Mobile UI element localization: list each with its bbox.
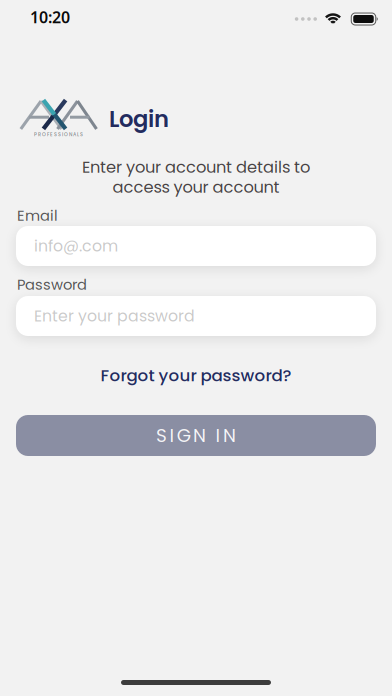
- staticText: Password: [17, 274, 87, 295]
- button[interactable]: Enter your password: [0, 296, 392, 336]
- staticText: Enter your account details to: [82, 156, 310, 178]
- staticText: Email: [17, 205, 58, 226]
- staticText: P R O F E S S I O N A L S: [34, 131, 83, 138]
- staticText: Enter your password: [34, 305, 195, 327]
- staticText: SIGN IN: [156, 423, 236, 448]
- staticText: Forgot your password?: [100, 364, 291, 387]
- staticText: Login: [109, 103, 169, 135]
- button[interactable]: SIGN IN: [0, 415, 392, 456]
- button[interactable]: Forgot your password?: [100, 368, 291, 383]
- staticText: 10:20: [30, 6, 70, 28]
- staticText: info@.com: [34, 235, 118, 257]
- staticText: access your account: [112, 176, 279, 198]
- button[interactable]: info@.com: [0, 226, 392, 266]
